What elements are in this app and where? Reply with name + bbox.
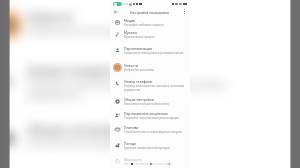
staticText: Погода xyxy=(124,141,136,146)
staticText: Избранные источники xyxy=(124,68,155,72)
button[interactable]: Новости xyxy=(110,61,190,77)
staticText: Общие настройки xyxy=(27,122,127,137)
staticText: Избранные источники xyxy=(27,24,127,36)
staticText: Общие настройки xyxy=(124,97,154,102)
button[interactable]: Recents xyxy=(128,160,135,167)
button[interactable]: More options xyxy=(180,8,188,16)
button[interactable]: Back xyxy=(112,8,120,16)
button[interactable]: Общие настройки xyxy=(110,95,190,109)
staticText: Новости xyxy=(27,9,73,24)
button[interactable]: Персонализация xyxy=(110,44,190,61)
button[interactable]: Back xyxy=(165,160,172,167)
staticText: Помощь в выполнении звонков и голосовом … xyxy=(124,84,188,91)
staticText: Способы оплаты и подтверждение покупок xyxy=(124,130,183,134)
staticText: Номер телефона xyxy=(27,63,119,78)
button[interactable]: Платежи xyxy=(110,123,190,139)
button[interactable]: Персонализация xyxy=(0,0,246,4)
staticText: Единицы измерения температуры xyxy=(124,146,171,150)
button[interactable]: Медиа xyxy=(110,16,190,28)
button[interactable]: Персональные результаты xyxy=(110,109,190,123)
staticText: Маршруты xyxy=(124,157,143,162)
button[interactable]: Новости xyxy=(0,4,246,58)
button[interactable]: Номер телефона xyxy=(110,77,190,95)
staticText: Настройки навигации и транспорта xyxy=(124,162,172,166)
button[interactable]: Общие настройки xyxy=(0,117,246,162)
button[interactable]: Погода xyxy=(110,139,190,155)
button[interactable]: Музыка xyxy=(110,28,190,44)
staticText: Различные настройки Ассистента xyxy=(124,102,169,106)
staticText: Персональные результаты xyxy=(124,111,168,116)
staticText: Новости xyxy=(124,63,138,68)
button[interactable]: Маршруты xyxy=(110,155,190,168)
staticText: Помощь в выполнении звонков и голосовом … xyxy=(27,78,241,101)
staticText: Платежи xyxy=(124,125,139,130)
button[interactable]: Home xyxy=(147,160,154,167)
staticText: Медиа xyxy=(124,18,136,23)
staticText: Настройте любимые сервисы xyxy=(124,23,164,27)
staticText: Настройки помощника xyxy=(130,10,169,15)
staticText: Персонализация xyxy=(124,46,152,51)
staticText: Различные настройки Ассистента xyxy=(27,137,175,149)
button[interactable]: Номер телефона xyxy=(0,58,246,117)
button[interactable]: Персональные результаты xyxy=(0,162,246,168)
staticText: Музыкальные сервисы xyxy=(124,35,155,39)
staticText: Сведения от помощника и установки сейчас xyxy=(124,51,184,55)
staticText: Музыка xyxy=(124,30,137,35)
staticText: Номер телефона xyxy=(124,79,152,84)
staticText: Получайте персональные рекомендации xyxy=(124,116,179,120)
